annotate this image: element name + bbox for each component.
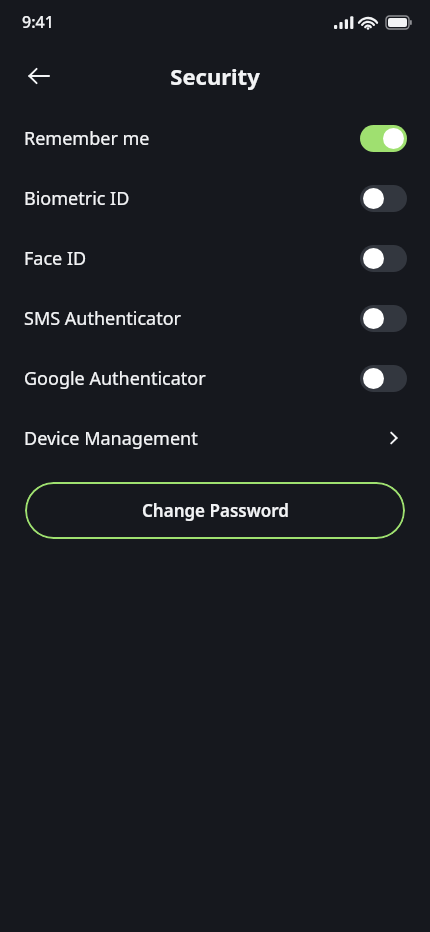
other: Off: [360, 245, 407, 272]
other: Off: [360, 305, 407, 332]
staticText: Biometric ID: [24, 186, 130, 211]
button[interactable]: Face ID: [0, 228, 430, 288]
other: Off: [360, 185, 407, 212]
staticText: 9:41: [22, 11, 54, 33]
button[interactable]: Biometric ID: [0, 168, 430, 228]
button[interactable]: Change Password: [25, 482, 405, 539]
staticText: Remember me: [24, 126, 150, 151]
staticText: Change Password: [142, 499, 289, 522]
button[interactable]: Google Authenticator: [0, 348, 430, 408]
button[interactable]: Remember me: [0, 108, 430, 168]
staticText: Google Authenticator: [24, 366, 206, 391]
staticText: Face ID: [24, 246, 87, 271]
other: On: [360, 125, 407, 152]
other: Off: [360, 365, 407, 392]
staticText: Device Management: [24, 426, 198, 451]
button[interactable]: SMS Authenticator: [0, 288, 430, 348]
button[interactable]: Back: [14, 51, 64, 101]
staticText: SMS Authenticator: [24, 306, 181, 331]
staticText: Security: [170, 61, 260, 91]
button[interactable]: Device Management: [0, 408, 430, 468]
other: Open: [384, 429, 402, 447]
